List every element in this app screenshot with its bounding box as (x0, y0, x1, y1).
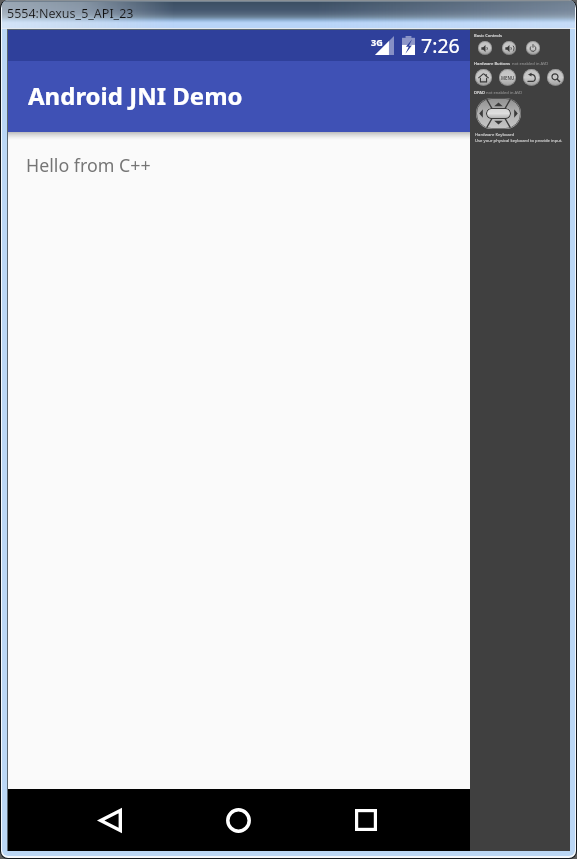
staticText: Hardware Buttons (474, 61, 512, 67)
button[interactable]: Menu (499, 69, 516, 86)
staticText: not enabled in AVD (486, 90, 523, 96)
button[interactable]: Home (475, 69, 492, 86)
staticText: DPAD (474, 90, 486, 96)
button[interactable]: Power (526, 41, 540, 55)
staticText: Use your physical keyboard to provide in… (475, 138, 563, 144)
staticText: Hardware Keyboard (475, 132, 515, 138)
staticText: MENU (501, 75, 515, 81)
staticText: 3G (371, 36, 383, 48)
button[interactable]: Home (206, 789, 270, 851)
staticText: Hello from C++ (26, 153, 151, 177)
button[interactable]: Back (523, 69, 540, 86)
button[interactable]: Volume down (478, 41, 492, 55)
staticText: 7:26 (421, 32, 460, 59)
button[interactable]: Back (78, 789, 142, 851)
staticText: Basic Controls (474, 33, 502, 39)
button[interactable]: Volume up (502, 41, 516, 55)
button[interactable]: Search (547, 69, 564, 86)
staticText: Android JNI Demo (28, 79, 243, 112)
staticText: not enabled in AVD (512, 61, 549, 67)
button[interactable]: Recents (334, 789, 398, 851)
staticText: 5554:Nexus_5_API_23 (7, 5, 134, 22)
button[interactable]: DPAD (476, 98, 521, 129)
